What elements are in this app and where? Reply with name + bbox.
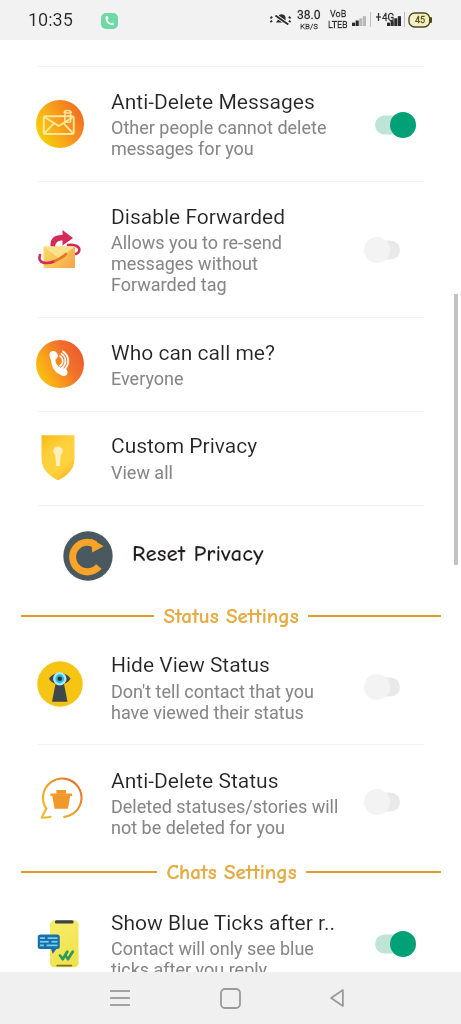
staticText: Who can call me? — [111, 341, 275, 366]
staticText: 10:35 — [28, 9, 73, 30]
button[interactable] — [0, 318, 461, 400]
staticText: Other people cannot delete — [111, 117, 327, 138]
staticText: Chats Settings — [166, 860, 297, 884]
button[interactable]: Switch on — [366, 929, 416, 959]
staticText: Reset Privacy — [132, 540, 264, 566]
staticText: Hide View Status — [111, 653, 270, 678]
staticText: not be deleted for you — [111, 817, 286, 838]
staticText: KB/S — [300, 22, 319, 31]
button[interactable]: Switch off — [366, 672, 416, 702]
button[interactable] — [0, 892, 461, 994]
staticText: Anti-Delete Status — [111, 769, 279, 794]
staticText: Deleted statuses/stories will — [111, 796, 339, 817]
staticText: Forwarded tag — [111, 274, 227, 295]
staticText: VoB — [330, 9, 347, 20]
button[interactable]: Recent apps — [96, 974, 144, 1022]
button[interactable]: Home — [206, 974, 254, 1022]
button[interactable] — [0, 745, 461, 852]
staticText: messages for you — [111, 138, 254, 159]
staticText: View all — [111, 462, 173, 483]
staticText: ticks after you reply. — [111, 959, 271, 980]
staticText: Everyone — [111, 368, 184, 389]
button[interactable] — [0, 182, 461, 312]
staticText: Allows you to re-send — [111, 232, 282, 253]
staticText: Don't tell contact that you — [111, 681, 314, 702]
button[interactable] — [0, 634, 461, 737]
staticText: have viewed their status — [111, 702, 304, 723]
staticText: Contact will only see blue — [111, 938, 314, 959]
staticText: Anti-Delete Messages — [111, 90, 315, 115]
button[interactable]: Switch off — [366, 787, 416, 817]
staticText: messages without — [111, 253, 258, 274]
staticText: Status Settings — [163, 604, 299, 628]
staticText: Custom Privacy — [111, 434, 258, 459]
staticText: Show Blue Ticks after r.. — [111, 911, 336, 936]
staticText: 4G — [382, 12, 395, 24]
staticText: Disable Forwarded — [111, 205, 285, 230]
button[interactable] — [0, 412, 461, 494]
staticText: 38.0 — [297, 8, 321, 22]
button[interactable]: Reset Privacy — [0, 525, 461, 587]
staticText: 45 — [415, 15, 426, 26]
button[interactable] — [0, 67, 461, 173]
button[interactable]: Switch on — [366, 110, 416, 140]
staticText: LTEB — [328, 20, 348, 31]
button[interactable]: Back — [313, 974, 361, 1022]
button[interactable]: Switch off — [366, 235, 416, 265]
